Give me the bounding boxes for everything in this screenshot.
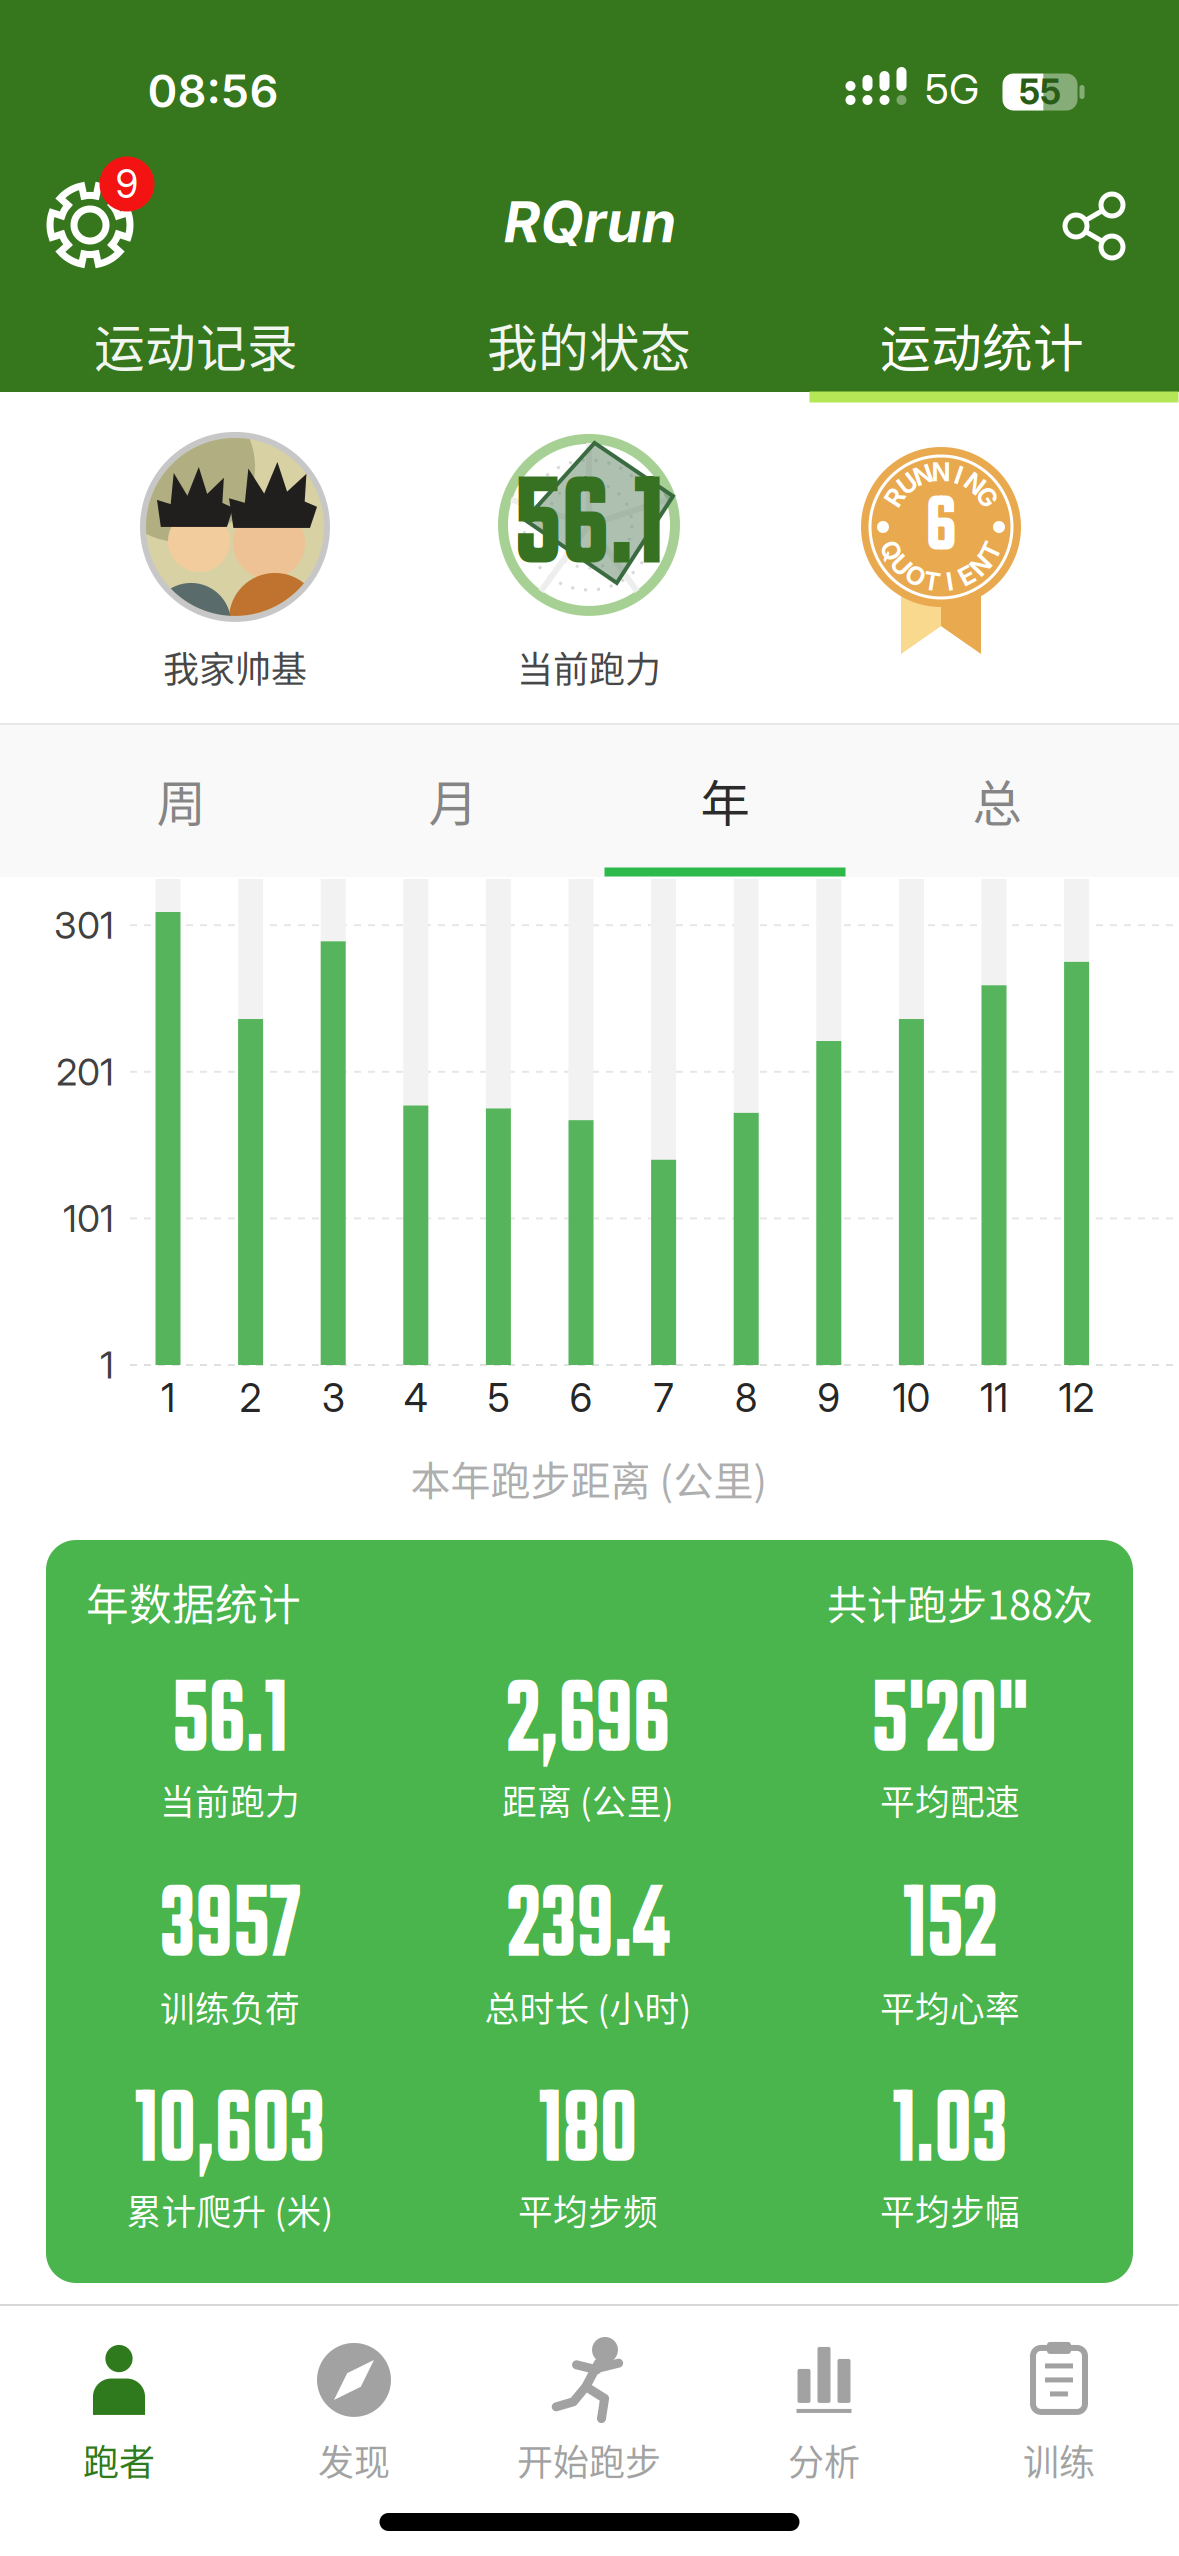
staticText: E (959, 560, 974, 591)
staticText: 累计爬升 (米) (126, 2185, 333, 2235)
staticText: 总 (972, 764, 1021, 836)
button[interactable]: 发现 (236, 2327, 471, 2497)
staticText: 当前跑力 (517, 641, 661, 693)
staticText: 总时长 (小时) (484, 1982, 691, 2032)
staticText: 56.1 (150, 1645, 309, 1803)
staticText: 5 (487, 1375, 509, 1421)
staticText: 周 (156, 764, 205, 836)
staticText: 开始跑步 (517, 2434, 661, 2486)
staticText: N (931, 457, 950, 487)
staticText: 发现 (318, 2434, 390, 2486)
staticText: 运动统计 (880, 308, 1084, 382)
staticText: I (946, 566, 953, 597)
staticText: 跑者 (83, 2434, 155, 2486)
staticText: 239.4 (476, 1850, 699, 2008)
staticText: T (982, 535, 999, 566)
staticText: N (971, 550, 990, 580)
button[interactable]: 训练 (941, 2327, 1176, 2497)
staticText: 55 (1019, 71, 1061, 113)
staticText: 平均步频 (518, 2185, 658, 2235)
button[interactable]: 运动统计 (785, 300, 1178, 390)
staticText: 9 (817, 1375, 840, 1421)
staticText: U (892, 550, 910, 580)
staticText: 2,696 (475, 1645, 700, 1803)
button[interactable]: 运动记录 (0, 300, 392, 390)
button[interactable]: Running Quotient 6 (861, 447, 1021, 607)
staticText: 101 (63, 1196, 114, 1241)
staticText: 11 (980, 1375, 1008, 1421)
staticText: 08:56 (147, 64, 278, 118)
staticText: 2 (240, 1375, 262, 1421)
staticText: 8 (735, 1375, 758, 1421)
staticText: 训练 (1023, 2434, 1095, 2486)
staticText: T (924, 566, 941, 597)
staticText: 月 (428, 764, 477, 836)
staticText: 1 (100, 1342, 114, 1388)
button[interactable]: 总 (861, 740, 1133, 860)
staticText: 5G (925, 64, 979, 114)
staticText: 分析 (788, 2434, 860, 2486)
staticText: 12 (1059, 1375, 1095, 1421)
staticText: Q (882, 535, 901, 566)
staticText: 180 (520, 2055, 656, 2213)
button[interactable]: 周 (45, 740, 317, 860)
button[interactable]: 开始跑步 (471, 2327, 706, 2497)
staticText: 6 (569, 1375, 592, 1421)
staticText: 本年跑步距离 (公里) (410, 1449, 767, 1507)
staticText: 年 (700, 764, 749, 836)
button[interactable]: Share (1039, 171, 1149, 281)
staticText: U (898, 468, 916, 499)
staticText: 9 (115, 161, 138, 207)
staticText: RQrun (503, 188, 676, 256)
staticText: 我家帅基 (163, 641, 307, 693)
button[interactable]: 我家帅基 (140, 432, 330, 693)
staticText: I (955, 460, 962, 490)
staticText: 3957 (134, 1850, 326, 2008)
staticText: 我的状态 (487, 308, 691, 382)
staticText: 训练负荷 (160, 1982, 300, 2032)
button[interactable]: Settings (20, 155, 160, 295)
button[interactable]: 月 (317, 740, 589, 860)
staticText: 56.1 (492, 433, 685, 626)
button[interactable]: 分析 (706, 2327, 941, 2497)
staticText: 距离 (公里) (502, 1775, 674, 1825)
button[interactable]: 跑者 (1, 2327, 236, 2497)
staticText: 平均配速 (880, 1775, 1020, 1825)
staticText: 152 (885, 1850, 1015, 2008)
staticText: 4 (404, 1375, 428, 1421)
staticText: 201 (56, 1049, 114, 1094)
staticText: 1 (161, 1375, 175, 1421)
staticText: 10,603 (99, 2055, 361, 2213)
staticText: N (965, 468, 984, 499)
button[interactable]: 年 (589, 740, 861, 860)
staticText: 3 (322, 1375, 345, 1421)
staticText: 平均心率 (880, 1982, 1020, 2032)
staticText: N (914, 460, 933, 490)
staticText: G (978, 482, 997, 512)
staticText: 共计跑步188次 (827, 1573, 1093, 1631)
staticText: R (886, 482, 903, 512)
staticText: 10 (892, 1375, 930, 1421)
staticText: O (906, 560, 925, 591)
button[interactable]: 当前跑力 56.1 (498, 434, 680, 693)
staticText: 5'20" (842, 1645, 1058, 1803)
button[interactable]: 我的状态 (392, 300, 785, 390)
staticText: 1.03 (870, 2055, 1029, 2213)
staticText: 运动记录 (94, 308, 298, 382)
staticText: 当前跑力 (160, 1775, 300, 1825)
staticText: 6 (921, 468, 960, 590)
staticText: 7 (654, 1375, 674, 1421)
staticText: 301 (54, 903, 114, 948)
staticText: 平均步幅 (880, 2185, 1020, 2235)
staticText: 年数据统计 (86, 1571, 301, 1633)
